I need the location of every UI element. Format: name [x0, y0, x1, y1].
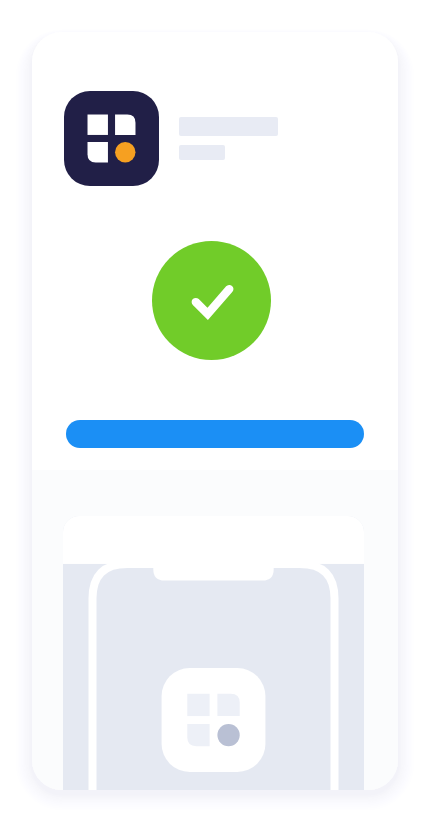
button[interactable]: App icon — [64, 91, 159, 186]
button[interactable]: Continue — [66, 420, 364, 448]
button[interactable]: Success — [152, 241, 271, 360]
